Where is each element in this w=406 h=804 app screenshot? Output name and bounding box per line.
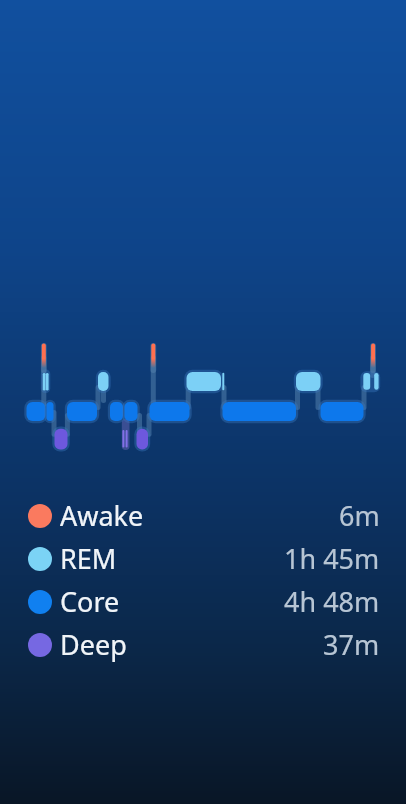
staticText: 4h 48m	[284, 583, 380, 620]
staticText: 1h 45m	[284, 540, 380, 577]
staticText: Core	[60, 583, 120, 620]
button[interactable]: Awake	[0, 494, 406, 537]
staticText: Awake	[60, 497, 144, 534]
staticText: 6m	[339, 497, 380, 534]
staticText: 37m	[323, 626, 380, 663]
button[interactable]: Deep	[0, 623, 406, 666]
staticText: Deep	[60, 626, 127, 663]
staticText: REM	[60, 540, 117, 577]
button[interactable]: REM	[0, 537, 406, 580]
button[interactable]: Core	[0, 580, 406, 623]
